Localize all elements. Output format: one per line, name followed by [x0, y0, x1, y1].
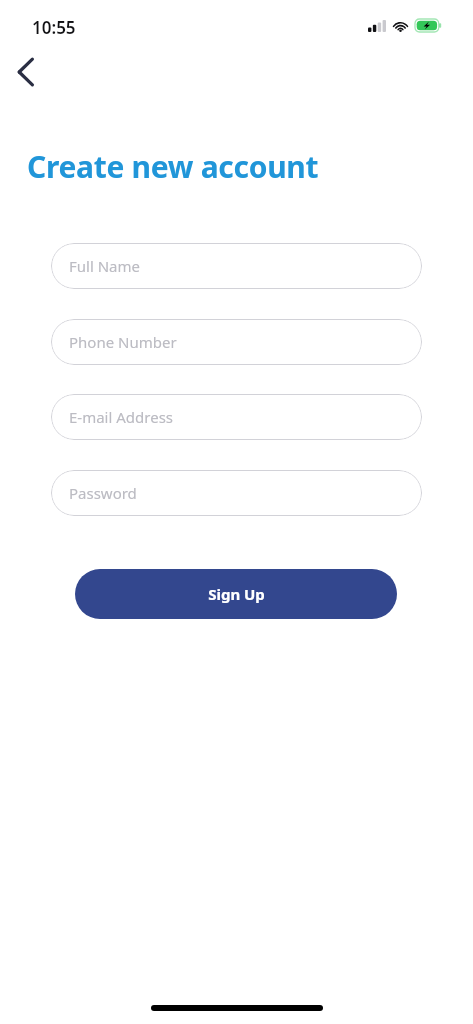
staticText: Create new account [27, 146, 319, 187]
staticText: 10:55 [32, 16, 76, 39]
staticText: Sign Up [208, 584, 265, 604]
button[interactable]: Full Name [51, 243, 422, 289]
staticText: Phone Number [69, 332, 177, 352]
button[interactable]: Phone Number [51, 319, 422, 365]
button[interactable]: Password [51, 470, 422, 516]
button[interactable]: Back [4, 50, 48, 94]
button[interactable]: Sign Up [75, 569, 397, 619]
staticText: Full Name [69, 256, 140, 276]
staticText: Password [69, 483, 137, 503]
staticText: E-mail Address [69, 407, 174, 427]
button[interactable]: E-mail Address [51, 394, 422, 440]
